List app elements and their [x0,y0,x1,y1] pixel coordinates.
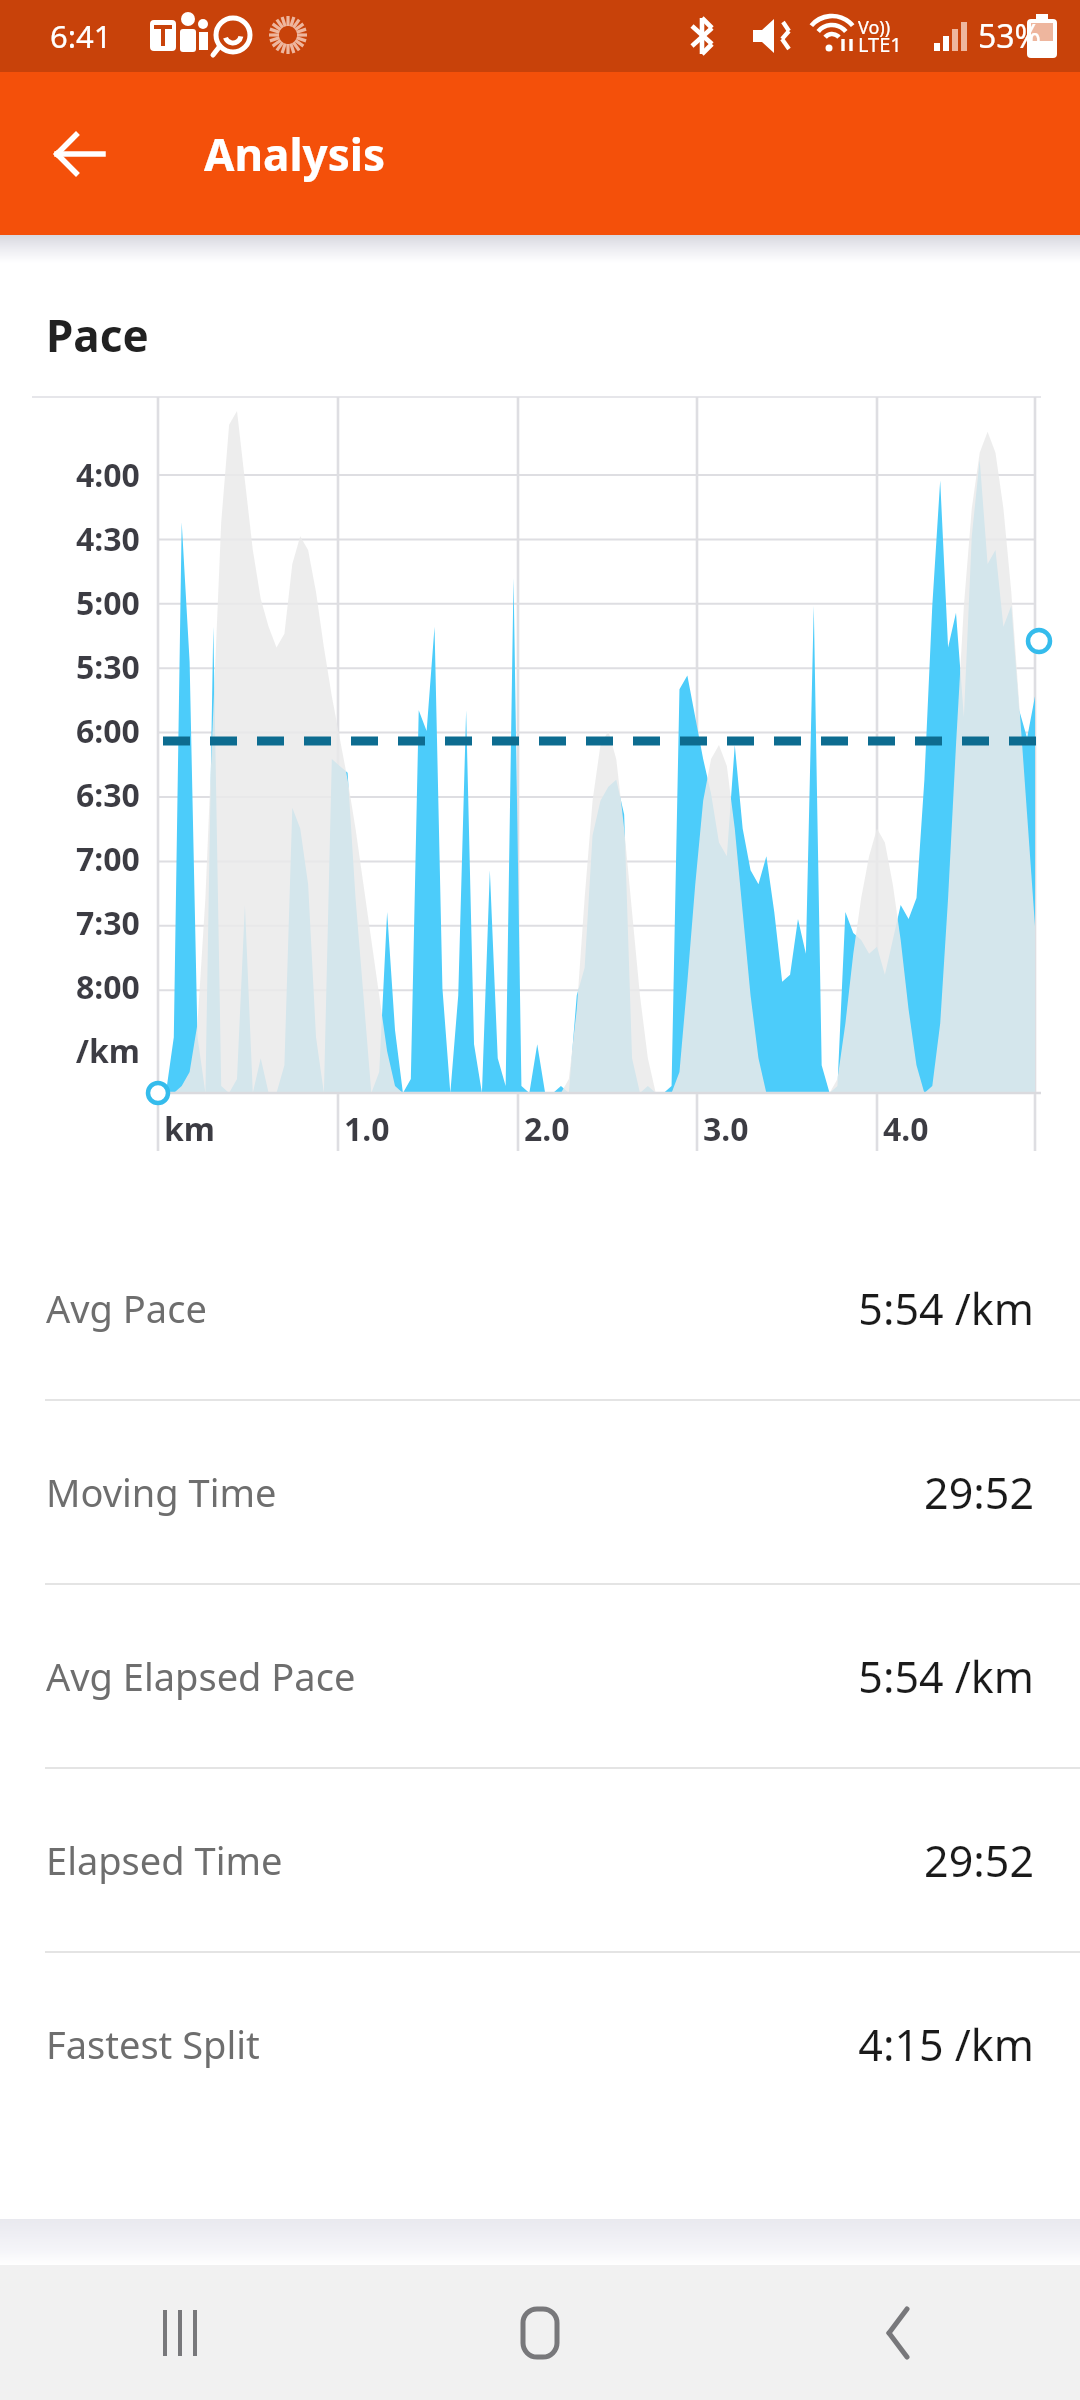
staticText: 7:30 [76,901,140,945]
staticText: LTE1 [858,31,902,58]
button[interactable]: Moving Time [0,1401,1080,1583]
button[interactable]: Recents [0,2265,360,2400]
button[interactable]: Elapsed Time [0,1769,1080,1951]
staticText: 5:54 /km [858,1647,1034,1706]
staticText: 7:00 [76,837,140,881]
button[interactable]: Fastest Split [0,1953,1080,2135]
staticText: 6:00 [76,709,140,753]
staticText: 6:41 [50,15,112,57]
staticText: 53% [978,14,1042,58]
staticText: 2.0 [524,1107,570,1151]
staticText: 29:52 [924,1463,1034,1522]
button[interactable]: Back [720,2265,1080,2400]
staticText: 5:30 [76,645,140,689]
button[interactable]: Back [34,108,126,200]
staticText: Avg Pace [46,1282,207,1334]
staticText: 3.0 [703,1107,749,1151]
button[interactable]: Avg Pace [0,1217,1080,1399]
staticText: /km [0,1029,140,1073]
staticText: 29:52 [924,1831,1034,1890]
staticText: 4:30 [76,517,140,561]
staticText: 8:00 [76,965,140,1009]
staticText: Analysis [204,124,385,184]
button[interactable]: Avg Elapsed Pace [0,1585,1080,1767]
staticText: Avg Elapsed Pace [46,1650,356,1702]
staticText: 5:00 [76,581,140,625]
staticText: 6:30 [76,773,140,817]
staticText: 4:00 [76,453,140,497]
staticText: Fastest Split [46,2018,260,2070]
staticText: Vo)) [858,15,891,40]
staticText: Pace [46,305,149,365]
staticText: Elapsed Time [46,1834,283,1886]
staticText: 5:54 /km [858,1279,1034,1338]
button[interactable]: Home [360,2265,720,2400]
staticText: 4:15 /km [858,2015,1034,2074]
staticText: 4.0 [883,1107,929,1151]
staticText: Moving Time [46,1466,277,1518]
staticText: 1.0 [344,1107,390,1151]
staticText: km [164,1107,216,1151]
